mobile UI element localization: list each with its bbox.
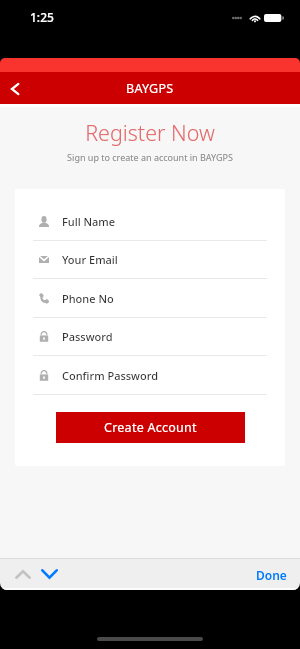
- button[interactable]: Previous field: [7, 561, 39, 587]
- staticText: 1:25: [30, 9, 54, 25]
- button[interactable]: Phone No: [15, 279, 285, 318]
- button[interactable]: Your Email: [15, 240, 285, 279]
- staticText: Register Now: [0, 118, 300, 147]
- staticText: Your Email: [62, 252, 118, 267]
- staticText: Confirm Password: [62, 368, 158, 383]
- button[interactable]: Full Name: [15, 202, 285, 241]
- button[interactable]: Confirm Password: [15, 356, 285, 395]
- button[interactable]: Next field: [33, 561, 65, 587]
- button[interactable]: Create Account: [56, 412, 245, 443]
- button[interactable]: Done: [246, 561, 300, 589]
- staticText: Sign up to create an account in BAYGPS: [0, 151, 300, 163]
- button[interactable]: Password: [15, 317, 285, 356]
- staticText: Password: [62, 329, 113, 344]
- staticText: BAYGPS: [126, 80, 174, 97]
- button[interactable]: Back: [0, 72, 30, 104]
- staticText: Full Name: [62, 214, 116, 229]
- staticText: Done: [256, 567, 287, 583]
- staticText: Phone No: [62, 291, 114, 306]
- staticText: Create Account: [104, 419, 197, 436]
